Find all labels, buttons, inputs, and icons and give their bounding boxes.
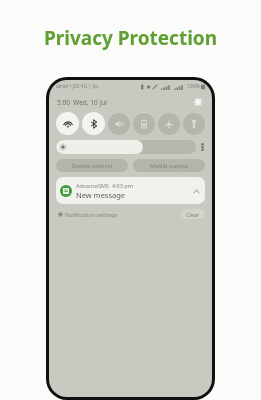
staticText: AdvanceSMS — [76, 182, 109, 189]
staticText: airtel • JIO 4G | Jio — [56, 83, 99, 90]
staticText: 4:03 pm — [112, 182, 133, 189]
button[interactable]: Mute — [108, 113, 130, 135]
staticText: Device control — [72, 162, 112, 170]
staticText: Privacy Protection — [0, 25, 261, 51]
button[interactable]: Brightness — [56, 140, 196, 154]
button[interactable]: Airplane mode — [158, 113, 180, 135]
button[interactable]: Wi-Fi — [56, 112, 79, 135]
staticText: Clear — [186, 211, 200, 218]
button[interactable]: Clear — [181, 209, 205, 219]
button[interactable]: Device control — [56, 159, 128, 172]
staticText: 5:00 Wed, 10 Jul — [57, 98, 107, 107]
button[interactable]: Bluetooth — [82, 112, 105, 135]
staticText: Notification settings — [65, 211, 118, 218]
button[interactable]: Battery saver — [133, 113, 155, 135]
button[interactable]: Media output — [133, 159, 205, 172]
button[interactable]: Settings — [192, 96, 204, 108]
button[interactable]: AdvanceSMS — [56, 177, 205, 204]
staticText: Media output — [150, 162, 189, 170]
button[interactable]: Collapse — [191, 186, 201, 196]
button[interactable]: Flashlight — [183, 113, 205, 135]
staticText: New message — [76, 190, 126, 200]
button[interactable]: Notification settings — [58, 211, 118, 218]
button[interactable]: More options — [196, 140, 208, 154]
staticText: 100% — [187, 83, 200, 90]
